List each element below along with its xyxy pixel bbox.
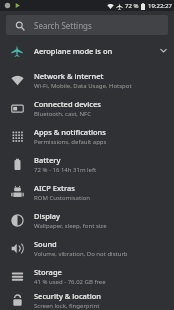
button[interactable]: Aeroplane mode is on	[0, 39, 174, 62]
button[interactable]: Storage	[0, 262, 174, 290]
button[interactable]: Display	[0, 206, 174, 234]
staticText: Bluetooth, cast, NFC	[34, 110, 91, 118]
button[interactable]: Battery	[0, 150, 174, 178]
staticText: 72 % - 16 14h 31m left	[34, 166, 97, 174]
staticText: Permissions, default apps	[34, 138, 107, 146]
staticText: Wi-Fi, Mobile, Data Usage, Hotspot	[34, 82, 132, 90]
button[interactable]: Apps & notifications	[0, 122, 174, 150]
staticText: Network & internet	[34, 71, 104, 81]
button[interactable]: Expand aeroplane mode	[152, 39, 174, 62]
staticText: Apps & notifications	[34, 127, 106, 137]
staticText: Connected devices	[34, 99, 101, 109]
button[interactable]: Sound	[0, 234, 174, 262]
staticText: 19:22:27	[148, 2, 172, 10]
staticText: Battery	[34, 155, 61, 165]
button[interactable]: Security & location	[0, 290, 174, 310]
staticText: 72 %	[125, 2, 139, 10]
button[interactable]: Connected devices	[0, 94, 174, 122]
staticText: Display	[34, 211, 61, 221]
staticText: Volume, vibration, Do not disturb	[34, 250, 128, 258]
staticText: Screen lock, fingerprint	[34, 302, 100, 310]
staticText: Aeroplane mode is on	[34, 46, 113, 56]
staticText: Wallpaper, sleep, font size	[34, 222, 107, 230]
button[interactable]: Search Settings	[6, 15, 168, 35]
staticText: Search Settings	[34, 20, 92, 31]
staticText: ROM Customisation	[34, 194, 91, 202]
button[interactable]: AICP Extras	[0, 178, 174, 206]
staticText: AICP Extras	[34, 183, 75, 193]
button[interactable]: Network & internet	[0, 66, 174, 94]
staticText: Storage	[34, 267, 62, 277]
staticText: 41 % used - 76.02 GB free	[34, 278, 106, 286]
staticText: Sound	[34, 239, 57, 249]
staticText: Security & location	[34, 291, 102, 301]
